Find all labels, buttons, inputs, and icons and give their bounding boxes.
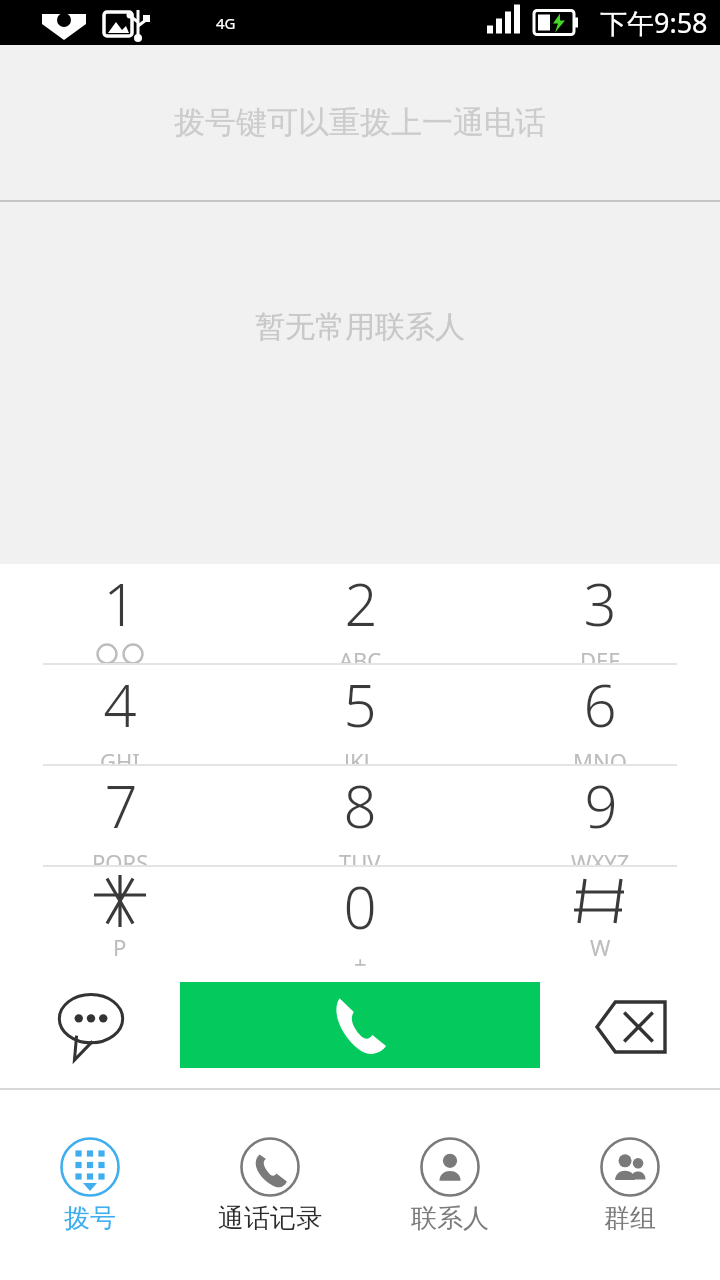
staticText: 拨号键可以重拨上一通电话: [174, 103, 546, 142]
button[interactable]: W: [480, 867, 720, 966]
staticText: +: [354, 948, 367, 966]
button[interactable]: 6: [480, 665, 720, 764]
staticText: 暂无常用联系人: [255, 308, 465, 346]
button[interactable]: 2: [240, 564, 480, 663]
button[interactable]: 3: [480, 564, 720, 663]
staticText: ABC: [339, 645, 382, 663]
button[interactable]: 5: [240, 665, 480, 764]
staticText: P: [113, 932, 127, 962]
staticText: 3: [583, 564, 617, 643]
button[interactable]: 9: [480, 766, 720, 865]
staticText: 1: [103, 564, 137, 643]
staticText: PQRS: [92, 847, 149, 865]
staticText: 7: [104, 766, 138, 845]
staticText: 8: [343, 766, 377, 845]
staticText: 通话记录: [218, 1202, 322, 1235]
staticText: TUV: [339, 847, 381, 865]
staticText: DEF: [580, 645, 620, 663]
staticText: W: [590, 932, 611, 962]
button[interactable]: 7: [0, 766, 240, 865]
button[interactable]: P: [0, 867, 240, 966]
button[interactable]: 群组: [540, 1090, 720, 1280]
staticText: 5: [343, 665, 377, 744]
button[interactable]: 0: [240, 867, 480, 966]
button[interactable]: 联系人: [360, 1090, 540, 1280]
button[interactable]: 拨号: [0, 1090, 180, 1280]
staticText: 2: [344, 564, 378, 643]
button[interactable]: 4: [0, 665, 240, 764]
staticText: 6: [583, 665, 617, 744]
staticText: 联系人: [411, 1202, 489, 1235]
staticText: 下午9:58: [600, 4, 708, 41]
staticText: MNO: [573, 746, 627, 764]
staticText: 9: [584, 766, 618, 845]
staticText: GHI: [100, 746, 140, 764]
button[interactable]: SMS: [44, 980, 138, 1074]
staticText: 4G: [216, 13, 236, 33]
button[interactable]: 通话记录: [180, 1090, 360, 1280]
button[interactable]: Backspace: [584, 980, 678, 1074]
staticText: 群组: [604, 1202, 656, 1235]
button[interactable]: 8: [240, 766, 480, 865]
button[interactable]: Call: [180, 982, 540, 1068]
staticText: 0: [343, 867, 377, 946]
button[interactable]: 1: [0, 564, 240, 663]
staticText: JKL: [344, 746, 376, 764]
staticText: WXYZ: [571, 847, 630, 865]
staticText: 4: [103, 665, 137, 744]
staticText: 拨号: [64, 1202, 116, 1235]
